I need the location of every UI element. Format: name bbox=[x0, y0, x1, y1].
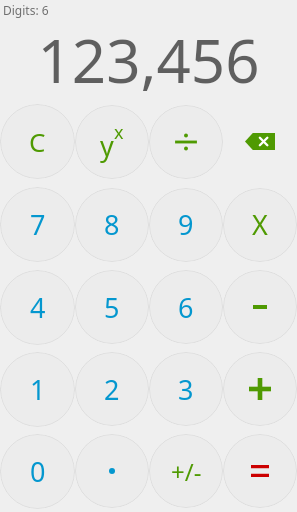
button[interactable]: y to the power of x bbox=[75, 100, 149, 183]
button[interactable]: 7 bbox=[0, 183, 75, 266]
button[interactable]: 3 bbox=[149, 348, 223, 430]
button[interactable]: 2 bbox=[75, 348, 149, 430]
button[interactable]: Divide bbox=[149, 100, 223, 183]
staticText: C bbox=[29, 124, 46, 159]
staticText: 6 bbox=[178, 289, 194, 326]
staticText: Digits: 6 bbox=[3, 2, 49, 18]
button[interactable]: Backspace bbox=[223, 100, 297, 183]
staticText: x bbox=[114, 120, 124, 145]
button[interactable]: Equals bbox=[223, 430, 297, 512]
staticText: 8 bbox=[104, 206, 120, 243]
button[interactable]: 0 bbox=[0, 430, 75, 512]
staticText: 4 bbox=[30, 289, 46, 326]
button[interactable]: Decimal point bbox=[75, 430, 149, 512]
button[interactable]: 5 bbox=[75, 266, 149, 348]
button[interactable]: Clear bbox=[0, 100, 75, 183]
staticText: 5 bbox=[104, 289, 120, 326]
staticText: 7 bbox=[30, 206, 46, 243]
staticText: +/- bbox=[171, 455, 202, 488]
button[interactable]: 4 bbox=[0, 266, 75, 348]
button[interactable]: Plus bbox=[223, 348, 297, 430]
staticText: 2 bbox=[104, 371, 120, 408]
staticText: 3 bbox=[178, 371, 194, 408]
button[interactable]: Minus bbox=[223, 266, 297, 348]
staticText: 123,456 bbox=[0, 19, 297, 100]
staticText: 0 bbox=[30, 453, 46, 490]
button[interactable]: Plus minus bbox=[149, 430, 223, 512]
staticText: 1 bbox=[30, 371, 46, 408]
staticText: 9 bbox=[178, 206, 194, 243]
button[interactable]: 8 bbox=[75, 183, 149, 266]
button[interactable]: 6 bbox=[149, 266, 223, 348]
button[interactable]: 9 bbox=[149, 183, 223, 266]
staticText: X bbox=[252, 206, 268, 243]
button[interactable]: Multiply bbox=[223, 183, 297, 266]
staticText: y bbox=[100, 127, 114, 164]
button[interactable]: 1 bbox=[0, 348, 75, 430]
